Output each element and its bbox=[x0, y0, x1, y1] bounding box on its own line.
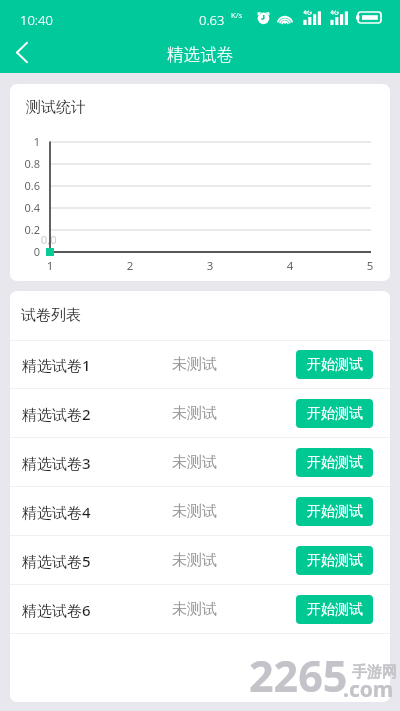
staticText: 1 bbox=[5, 134, 40, 149]
staticText: 未测试 bbox=[172, 355, 217, 374]
staticText: 精选试卷2 bbox=[22, 404, 91, 424]
button[interactable]: 开始测试 bbox=[296, 399, 373, 428]
staticText: 未测试 bbox=[172, 453, 217, 472]
staticText: 未测试 bbox=[172, 404, 217, 423]
button[interactable]: 开始测试 bbox=[296, 546, 373, 575]
staticText: 精选试卷3 bbox=[22, 453, 91, 473]
staticText: 手游网 bbox=[352, 663, 397, 682]
staticText: 开始测试 bbox=[307, 356, 363, 374]
staticText: 试卷列表 bbox=[21, 306, 81, 325]
staticText: 开始测试 bbox=[307, 405, 363, 423]
staticText: 未测试 bbox=[172, 502, 217, 521]
button[interactable]: 精选试卷2 bbox=[10, 389, 390, 438]
staticText: 精选试卷6 bbox=[22, 600, 91, 620]
staticText: 开始测试 bbox=[307, 454, 363, 472]
button[interactable]: 精选试卷3 bbox=[10, 438, 390, 487]
staticText: 开始测试 bbox=[307, 503, 363, 521]
staticText: 4 bbox=[280, 258, 300, 274]
staticText: 3 bbox=[200, 258, 220, 274]
staticText: 精选试卷5 bbox=[22, 551, 91, 571]
staticText: 0.4 bbox=[5, 200, 40, 215]
staticText: 5 bbox=[360, 258, 380, 274]
staticText: 10:40 bbox=[20, 11, 53, 29]
button[interactable]: 开始测试 bbox=[296, 350, 373, 379]
button[interactable]: 精选试卷1 bbox=[10, 340, 390, 389]
staticText: 精选试卷4 bbox=[22, 502, 91, 522]
staticText: 未测试 bbox=[172, 551, 217, 570]
staticText: 0 bbox=[5, 244, 40, 259]
button[interactable]: 精选试卷4 bbox=[10, 487, 390, 536]
staticText: 1 bbox=[40, 258, 60, 274]
staticText: 0.6 bbox=[5, 178, 40, 193]
button[interactable]: Back bbox=[0, 32, 44, 73]
staticText: 精选试卷1 bbox=[22, 355, 91, 375]
staticText: 未测试 bbox=[172, 600, 217, 619]
staticText: 开始测试 bbox=[307, 601, 363, 619]
staticText: 2 bbox=[120, 258, 140, 274]
staticText: 0.63 bbox=[199, 11, 225, 29]
staticText: 精选试卷 bbox=[167, 42, 233, 66]
staticText: K/s bbox=[231, 9, 243, 20]
button[interactable]: 精选试卷6 bbox=[10, 585, 390, 634]
button[interactable]: 开始测试 bbox=[296, 595, 373, 624]
staticText: .com bbox=[343, 675, 394, 704]
button[interactable]: 精选试卷5 bbox=[10, 536, 390, 585]
button[interactable]: 开始测试 bbox=[296, 497, 373, 526]
staticText: 2265 bbox=[249, 646, 348, 705]
staticText: 测试统计 bbox=[26, 98, 86, 117]
button[interactable]: 开始测试 bbox=[296, 448, 373, 477]
staticText: 0.8 bbox=[5, 156, 40, 171]
staticText: 0.2 bbox=[5, 222, 40, 237]
staticText: 0,0 bbox=[41, 232, 57, 247]
staticText: 开始测试 bbox=[307, 552, 363, 570]
